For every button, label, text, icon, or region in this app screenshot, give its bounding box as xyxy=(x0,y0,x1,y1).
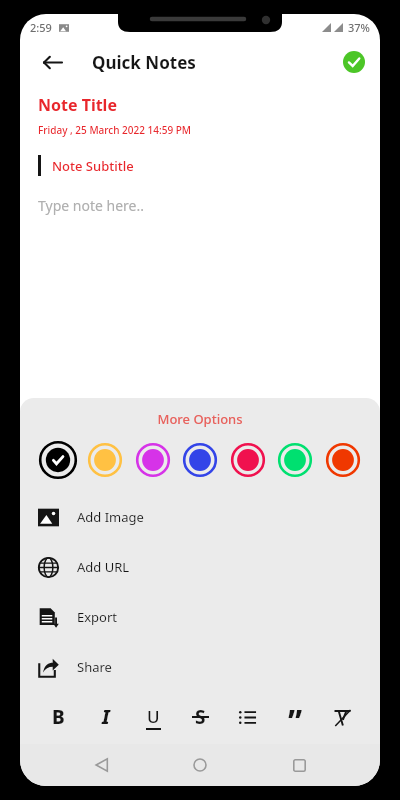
staticText: Quick Notes xyxy=(92,51,196,74)
staticText: More Options xyxy=(20,410,380,428)
staticText: Friday , 25 March 2022 14:59 PM xyxy=(38,123,192,137)
button[interactable]: Color 1 xyxy=(38,440,78,480)
button[interactable]: Share xyxy=(20,642,380,692)
button[interactable]: Note Subtitle xyxy=(38,155,134,176)
button[interactable]: Save note xyxy=(339,47,369,77)
button[interactable]: Color 6 xyxy=(275,440,315,480)
button[interactable]: Color 2 xyxy=(85,440,125,480)
staticText: S xyxy=(195,704,206,730)
button[interactable]: Color 5 xyxy=(228,440,268,480)
staticText: B xyxy=(52,704,65,730)
button[interactable]: Recents xyxy=(282,748,316,782)
button[interactable]: Color 4 xyxy=(180,440,220,480)
button[interactable]: Color 3 xyxy=(133,440,173,480)
staticText: Note Subtitle xyxy=(52,157,134,175)
button[interactable]: Back xyxy=(34,44,70,80)
staticText: 2:59 xyxy=(30,20,52,35)
button[interactable]: Back xyxy=(85,748,119,782)
staticText: 37% xyxy=(348,20,370,35)
staticText: Export xyxy=(77,608,118,626)
button[interactable]: Strikethrough xyxy=(183,700,217,734)
staticText: U xyxy=(147,705,160,728)
button[interactable]: Home xyxy=(183,748,217,782)
staticText: I xyxy=(102,704,110,730)
button[interactable]: Clear formatting xyxy=(325,700,359,734)
button[interactable]: Italic xyxy=(89,700,123,734)
staticText: ” xyxy=(288,700,303,734)
staticText: Add Image xyxy=(77,508,144,526)
button[interactable]: Add Image xyxy=(20,492,380,542)
button[interactable]: Note Title xyxy=(38,94,117,116)
staticText: Share xyxy=(77,658,112,676)
button[interactable]: Bullet list xyxy=(230,700,264,734)
button[interactable]: Type note here.. xyxy=(38,196,144,215)
staticText: Add URL xyxy=(77,558,130,576)
button[interactable]: Add URL xyxy=(20,542,380,592)
button[interactable]: Bold xyxy=(41,700,75,734)
button[interactable]: Color 7 xyxy=(323,440,363,480)
button[interactable]: Quote xyxy=(278,700,312,734)
button[interactable]: Export xyxy=(20,592,380,642)
button[interactable]: Underline xyxy=(136,700,170,734)
